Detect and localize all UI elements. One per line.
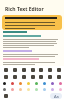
- button[interactable]: List: [29, 73, 36, 80]
- button[interactable]: Colour: [57, 86, 63, 92]
- button[interactable]: Colour: [1, 80, 7, 86]
- button[interactable]: Colour: [1, 86, 7, 92]
- button[interactable]: Colour: [33, 86, 39, 92]
- button[interactable]: Colour: [9, 86, 15, 92]
- button[interactable]: Colour: [25, 86, 31, 92]
- button[interactable]: Colour: [25, 80, 31, 86]
- button[interactable]: Bold: [2, 73, 9, 80]
- button[interactable]: Font: [2, 92, 9, 99]
- button[interactable]: Image: [55, 73, 62, 80]
- button[interactable]: Underline: [20, 73, 27, 80]
- button[interactable]: Text style: [2, 66, 9, 73]
- button[interactable]: Colour: [41, 86, 47, 92]
- button[interactable]: Colour: [57, 80, 63, 86]
- button[interactable]: Colour: [41, 80, 47, 86]
- button[interactable]: Link: [11, 66, 18, 73]
- button[interactable]: Align: [46, 66, 53, 73]
- button[interactable]: [2, 15, 62, 30]
- button[interactable]: Highlight: [20, 66, 27, 73]
- button[interactable]: More: [55, 66, 62, 73]
- staticText: Rich Text Editor: [5, 6, 44, 13]
- button[interactable]: Colour: [17, 80, 23, 86]
- button[interactable]: Redo: [37, 66, 44, 73]
- button[interactable]: Undo: [29, 66, 36, 73]
- button[interactable]: Quote: [37, 73, 44, 80]
- button[interactable]: Colour: [33, 80, 39, 86]
- button[interactable]: Rich Text Editor: [0, 4, 64, 14]
- button[interactable]: Colour: [49, 86, 55, 92]
- button[interactable]: Code: [46, 73, 53, 80]
- button[interactable]: Italic: [11, 73, 18, 80]
- button[interactable]: Colour: [17, 86, 23, 92]
- button[interactable]: Colour: [9, 80, 15, 86]
- button[interactable]: Aa: [50, 93, 62, 99]
- button[interactable]: Colour: [49, 80, 55, 86]
- staticText: Aa: [54, 94, 59, 99]
